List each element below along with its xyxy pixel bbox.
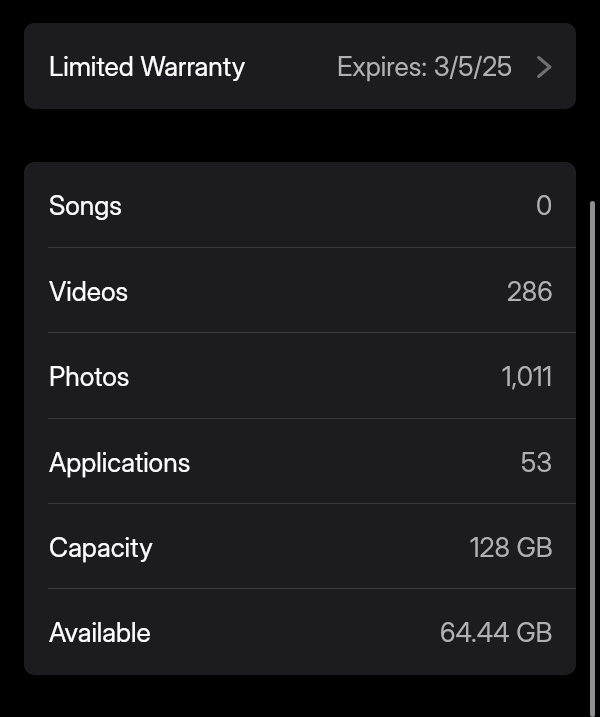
other: Scroll position <box>590 201 595 717</box>
staticText: 0 <box>536 189 553 221</box>
button[interactable]: Available <box>24 589 576 675</box>
button[interactable]: Capacity <box>24 504 576 589</box>
staticText: Songs <box>49 189 122 221</box>
button[interactable]: Photos <box>24 333 576 419</box>
staticText: 1,011 <box>502 360 553 392</box>
staticText: Applications <box>49 446 191 478</box>
button[interactable]: Applications <box>24 419 576 504</box>
button[interactable]: Songs <box>24 162 576 248</box>
staticText: Videos <box>49 275 129 307</box>
staticText: 286 <box>507 275 553 307</box>
staticText: 64.44 GB <box>440 616 553 648</box>
staticText: 128 GB <box>470 531 553 563</box>
button[interactable]: Limited Warranty <box>24 23 576 109</box>
staticText: Expires: 3/5/25 <box>337 50 513 82</box>
staticText: Photos <box>49 360 130 392</box>
staticText: 53 <box>521 446 553 478</box>
staticText: Available <box>49 616 151 648</box>
button[interactable]: Videos <box>24 248 576 333</box>
staticText: Capacity <box>49 531 153 563</box>
staticText: Limited Warranty <box>49 50 246 82</box>
